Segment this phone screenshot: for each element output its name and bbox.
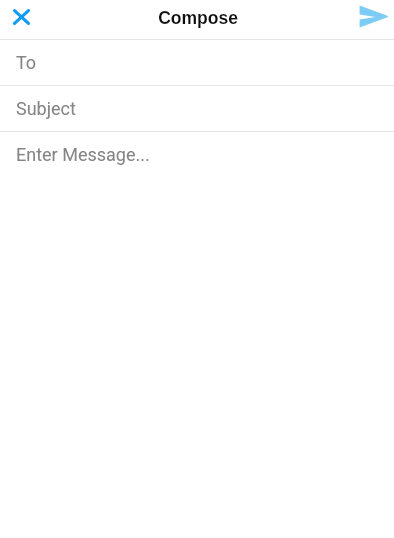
staticText: Enter Message... xyxy=(16,144,150,165)
staticText: Compose xyxy=(158,8,238,28)
button[interactable]: To xyxy=(0,40,394,85)
button[interactable]: Subject xyxy=(0,86,394,131)
button[interactable]: Close xyxy=(0,0,42,39)
staticText: Subject xyxy=(16,98,76,119)
button[interactable]: Enter Message... xyxy=(0,132,394,177)
button[interactable]: Send xyxy=(352,0,394,39)
staticText: To xyxy=(16,52,37,73)
